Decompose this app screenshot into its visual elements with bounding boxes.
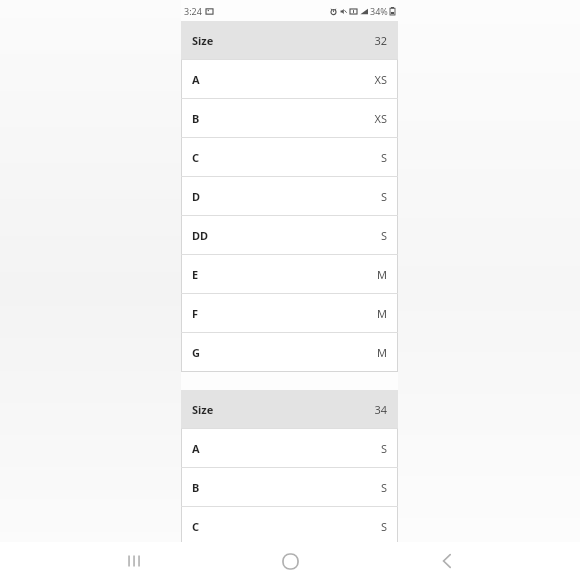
staticText: Size xyxy=(192,33,214,48)
staticText: A xyxy=(192,72,200,87)
button[interactable]: A xyxy=(181,60,398,98)
staticText: S xyxy=(380,150,387,165)
button[interactable]: B xyxy=(181,99,398,137)
staticText: Size xyxy=(192,402,214,417)
button[interactable]: D xyxy=(181,546,398,580)
button[interactable]: G xyxy=(181,333,398,371)
staticText: DD xyxy=(192,228,209,243)
button[interactable]: Size xyxy=(181,21,398,59)
staticText: S xyxy=(380,189,387,204)
staticText: E xyxy=(192,267,199,282)
staticText: B xyxy=(192,480,200,495)
staticText: S xyxy=(380,519,387,534)
button[interactable]: E xyxy=(181,255,398,293)
staticText: XS xyxy=(374,72,387,87)
button[interactable]: D xyxy=(181,177,398,215)
staticText: 3:24 xyxy=(184,5,202,17)
staticText: C xyxy=(192,150,200,165)
button[interactable]: B xyxy=(181,468,398,506)
button[interactable]: DD xyxy=(181,216,398,254)
button[interactable]: C xyxy=(181,138,398,176)
staticText: S xyxy=(380,480,387,495)
staticText: A xyxy=(192,441,200,456)
staticText: S xyxy=(380,441,387,456)
staticText: D xyxy=(192,189,201,204)
staticText: G xyxy=(192,345,200,360)
button[interactable]: F xyxy=(181,294,398,332)
button[interactable]: Size xyxy=(181,390,398,428)
staticText: B xyxy=(192,111,200,126)
button[interactable]: C xyxy=(181,507,398,545)
staticText: M xyxy=(377,345,387,360)
staticText: M xyxy=(377,267,387,282)
button[interactable]: Back xyxy=(424,542,470,580)
staticText: F xyxy=(192,306,199,321)
staticText: XS xyxy=(374,111,387,126)
button[interactable]: A xyxy=(181,429,398,467)
button[interactable]: Home xyxy=(267,542,313,580)
staticText: S xyxy=(380,228,387,243)
staticText: C xyxy=(192,519,200,534)
staticText: 34% xyxy=(370,5,388,17)
button[interactable]: Recent apps xyxy=(111,542,157,580)
staticText: 32 xyxy=(374,33,387,48)
staticText: M xyxy=(377,306,387,321)
staticText: 34 xyxy=(374,402,387,417)
